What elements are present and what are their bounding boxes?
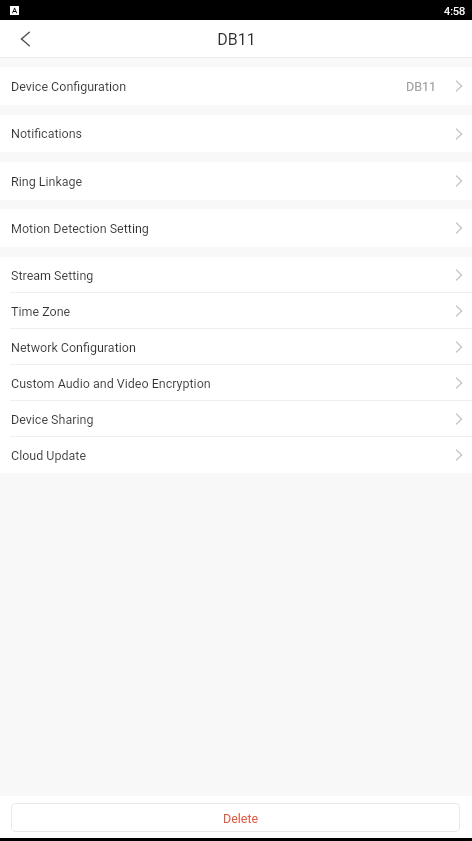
staticText: Stream Setting	[11, 268, 94, 283]
button[interactable]: Stream Setting	[0, 257, 472, 293]
staticText: Delete	[223, 811, 259, 826]
staticText: Cloud Update	[11, 448, 87, 463]
staticText: 4:58	[444, 5, 466, 18]
button[interactable]: Device Configuration	[0, 67, 472, 105]
button[interactable]: Network Configuration	[0, 329, 472, 365]
button[interactable]: Time Zone	[0, 293, 472, 329]
staticText: Network Configuration	[11, 340, 136, 355]
staticText: DB11	[406, 79, 437, 94]
button[interactable]: Ring Linkage	[0, 162, 472, 200]
button[interactable]: Cloud Update	[0, 437, 472, 473]
button[interactable]: Delete	[11, 803, 460, 832]
staticText: A	[12, 6, 18, 15]
button[interactable]: Custom Audio and Video Encryption	[0, 365, 472, 401]
staticText: Time Zone	[11, 304, 71, 319]
staticText: Device Sharing	[11, 412, 94, 427]
staticText: Custom Audio and Video Encryption	[11, 376, 211, 391]
staticText: Device Configuration	[11, 79, 127, 94]
button[interactable]: Back	[0, 20, 50, 57]
staticText: Ring Linkage	[11, 174, 83, 189]
staticText: DB11	[217, 30, 256, 49]
button[interactable]: Notifications	[0, 115, 472, 152]
staticText: Notifications	[11, 126, 83, 141]
button[interactable]: Device Sharing	[0, 401, 472, 437]
button[interactable]: Motion Detection Setting	[0, 209, 472, 247]
staticText: Motion Detection Setting	[11, 221, 149, 236]
